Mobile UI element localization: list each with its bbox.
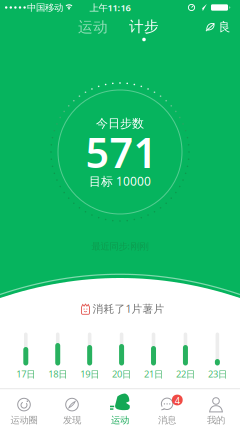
- staticText: 上午11:16: [89, 1, 130, 14]
- staticText: 23日: [208, 368, 227, 380]
- staticText: 571: [85, 125, 157, 179]
- button[interactable]: 运动圈: [0, 389, 48, 427]
- staticText: 计步: [129, 17, 159, 35]
- staticText: 运动: [78, 18, 108, 36]
- button[interactable]: 计步: [124, 15, 164, 37]
- staticText: 运动: [111, 414, 129, 426]
- staticText: 今日步数: [96, 116, 144, 131]
- staticText: 良: [218, 20, 230, 34]
- staticText: 中国移动: [27, 2, 63, 13]
- staticText: 目标 10000: [89, 173, 151, 189]
- staticText: 运动圈: [10, 414, 37, 426]
- staticText: 21日: [144, 368, 163, 380]
- staticText: 消耗了1片薯片: [92, 301, 164, 316]
- staticText: 17日: [16, 368, 35, 380]
- staticText: 消息: [158, 414, 176, 426]
- staticText: 最近同步:刚刚: [91, 240, 148, 252]
- button[interactable]: 良: [201, 17, 235, 37]
- button[interactable]: 我的: [192, 389, 240, 427]
- button[interactable]: 发现: [48, 389, 96, 427]
- staticText: 4: [175, 394, 180, 406]
- staticText: 我的: [207, 414, 225, 426]
- button[interactable]: 运动: [96, 389, 144, 427]
- button[interactable]: 运动: [73, 16, 113, 38]
- staticText: 19日: [80, 368, 99, 380]
- staticText: 20日: [112, 368, 131, 380]
- staticText: 18日: [48, 368, 67, 380]
- button[interactable]: 4: [144, 389, 192, 427]
- staticText: 发现: [63, 414, 81, 426]
- staticText: 22日: [176, 368, 195, 380]
